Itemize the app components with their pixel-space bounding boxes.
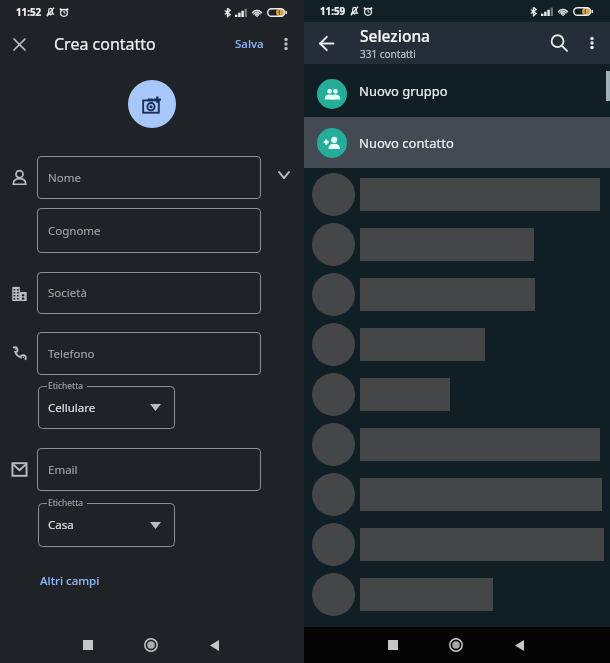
staticText: Cognome: [48, 223, 101, 239]
button[interactable]: [304, 319, 610, 369]
button[interactable]: More options: [274, 32, 298, 56]
staticText: Cellulare: [48, 400, 96, 416]
button[interactable]: Nuovo gruppo: [304, 64, 610, 117]
button[interactable]: Home: [442, 631, 470, 659]
button[interactable]: Email: [37, 448, 261, 491]
staticText: Casa: [48, 517, 74, 533]
staticText: Seleziona: [360, 25, 430, 46]
button[interactable]: Close: [7, 32, 31, 56]
button[interactable]: Expand: [274, 165, 294, 185]
button[interactable]: Search: [546, 30, 572, 56]
staticText: 11:52: [16, 6, 42, 19]
staticText: Email: [48, 462, 78, 478]
button[interactable]: More options: [580, 31, 604, 55]
button[interactable]: Home: [137, 631, 165, 659]
button[interactable]: Etichetta: [38, 503, 175, 547]
button[interactable]: Etichetta: [38, 386, 175, 429]
staticText: Telefono: [48, 346, 95, 362]
staticText: Salva: [235, 36, 264, 52]
staticText: 331 contatti: [360, 47, 416, 61]
button[interactable]: Recents: [74, 631, 102, 659]
button[interactable]: [304, 519, 610, 569]
button[interactable]: Salva: [231, 32, 268, 56]
button[interactable]: [304, 219, 610, 269]
button[interactable]: Back: [505, 631, 533, 659]
button[interactable]: Nuovo contatto: [304, 117, 610, 168]
staticText: Nuovo gruppo: [359, 82, 448, 100]
staticText: Etichetta: [48, 497, 84, 509]
button[interactable]: [304, 469, 610, 519]
button[interactable]: Add photo: [128, 80, 176, 128]
staticText: Etichetta: [48, 380, 84, 392]
staticText: Crea contatto: [54, 33, 156, 55]
button[interactable]: [304, 369, 610, 419]
staticText: 11:59: [320, 5, 346, 18]
button[interactable]: [304, 569, 610, 619]
button[interactable]: [304, 169, 610, 219]
button[interactable]: Back: [314, 31, 338, 55]
button[interactable]: [304, 419, 610, 469]
button[interactable]: Società: [37, 272, 261, 314]
staticText: Società: [48, 285, 87, 301]
button[interactable]: Altri campi: [36, 569, 104, 593]
button[interactable]: Telefono: [37, 332, 261, 375]
button[interactable]: Nome: [37, 156, 261, 199]
button[interactable]: [304, 269, 610, 319]
staticText: Nome: [48, 170, 81, 186]
staticText: Altri campi: [40, 573, 100, 589]
button[interactable]: Cognome: [37, 208, 261, 253]
staticText: Nuovo contatto: [359, 134, 454, 152]
button[interactable]: Recents: [379, 631, 407, 659]
button[interactable]: Back: [200, 631, 228, 659]
